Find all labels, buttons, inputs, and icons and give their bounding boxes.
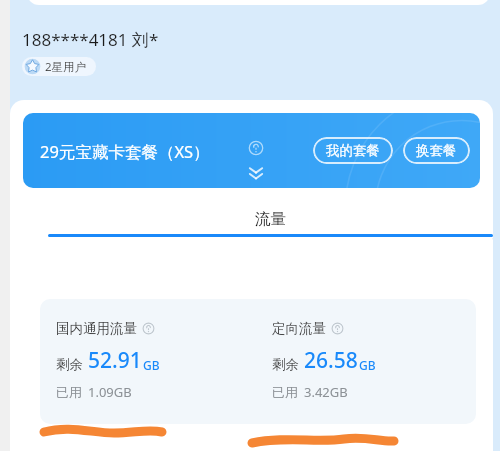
staticText: 已用 xyxy=(56,384,82,400)
staticText: 剩余 xyxy=(272,356,299,373)
staticText: 26.58 xyxy=(304,346,358,375)
staticText: 剩余 xyxy=(56,356,83,373)
staticText: 已用 xyxy=(272,384,298,400)
staticText: 国内通用流量 xyxy=(56,320,137,337)
button[interactable]: 说明 xyxy=(142,322,155,335)
button[interactable]: 29元宝藏卡套餐（XS） xyxy=(23,113,480,188)
staticText: 换套餐 xyxy=(416,142,457,159)
button[interactable]: 套餐说明 xyxy=(248,140,264,156)
staticText: 2星用户 xyxy=(45,59,87,75)
staticText: 3.42GB xyxy=(304,383,348,401)
button[interactable]: 说明 xyxy=(331,322,344,335)
button[interactable]: 换套餐 xyxy=(403,137,470,164)
button[interactable]: 流量 xyxy=(48,209,493,237)
staticText: 流量 xyxy=(255,209,286,229)
staticText: 我的套餐 xyxy=(326,142,380,159)
button[interactable]: 我的套餐 xyxy=(313,137,393,164)
staticText: GB xyxy=(359,357,376,373)
button[interactable]: 2星用户 xyxy=(22,57,96,76)
staticText: 52.91 xyxy=(88,346,142,375)
staticText: 188****4181 刘* xyxy=(22,28,159,51)
staticText: 29元宝藏卡套餐（XS） xyxy=(40,140,210,163)
staticText: 定向流量 xyxy=(272,320,326,337)
staticText: 1.09GB xyxy=(88,383,132,401)
staticText: GB xyxy=(143,357,160,373)
button[interactable]: 展开 xyxy=(247,165,265,181)
